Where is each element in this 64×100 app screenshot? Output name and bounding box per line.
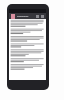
button[interactable] [9,19,46,80]
staticText: Comments [17,15,29,18]
button[interactable]: Comments [9,13,46,19]
